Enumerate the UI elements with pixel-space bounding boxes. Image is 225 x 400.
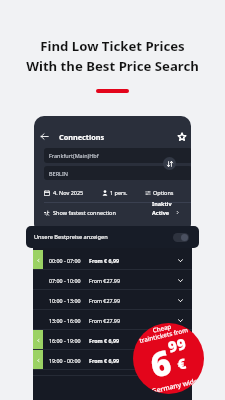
staticText: 16:00 - 19:00 [49, 337, 81, 344]
staticText: Active [152, 209, 170, 216]
button[interactable]: BERLIN [44, 166, 191, 180]
staticText: 10:00 - 13:00 [49, 297, 81, 304]
staticText: 00:00 - 07:00 [49, 257, 81, 264]
staticText: From € 6,99 [89, 257, 120, 264]
button[interactable]: 1 pers. [102, 189, 128, 196]
staticText: 19:00 - 00:00 [49, 357, 81, 364]
staticText: 1 pers. [110, 189, 128, 196]
staticText: Find Low Ticket Prices [40, 37, 185, 55]
staticText: Connections [59, 132, 105, 142]
staticText: Options [153, 189, 174, 196]
button[interactable]: 07:00 - 10:00 [33, 270, 192, 290]
button[interactable]: 4. Nov 2025 [44, 189, 84, 196]
button[interactable]: 16:00 - 19:00 [33, 330, 192, 350]
staticText: From €27.99 [89, 297, 120, 304]
staticText: 4. Nov 2025 [53, 189, 84, 196]
staticText: Show fastest connection [53, 209, 116, 216]
staticText: Inaktiv [152, 200, 172, 207]
button[interactable]: 13:00 - 16:00 [33, 310, 192, 330]
button[interactable]: Cheap traintickets from 6,99 euro German… [133, 323, 204, 394]
button[interactable]: Favourite [176, 131, 187, 142]
staticText: With the Best Price Search [26, 57, 199, 75]
staticText: Unsere Bestpreise anzeigen [34, 233, 108, 241]
button[interactable]: 00:00 - 07:00 [33, 250, 192, 270]
staticText: 6 [146, 338, 176, 388]
button[interactable]: 19:00 - 00:00 [33, 350, 192, 370]
staticText: Cheap traintickets from [136, 323, 189, 344]
staticText: From € 6,99 [89, 337, 120, 344]
button[interactable]: Unsere Bestpreise anzeigen [26, 226, 199, 248]
button[interactable]: Show fastest connection [44, 207, 191, 218]
staticText: From €27.99 [89, 317, 120, 324]
staticText: 07:00 - 10:00 [49, 277, 81, 284]
button[interactable]: Swap stations [163, 157, 176, 170]
staticText: BERLIN [49, 170, 68, 177]
staticText: From €27.99 [89, 277, 120, 284]
button[interactable]: 10:00 - 13:00 [33, 290, 192, 310]
staticText: 99 [166, 333, 188, 357]
button[interactable]: Frankfurt(Main)Hbf [44, 148, 191, 163]
staticText: 13:00 - 16:00 [49, 317, 81, 324]
staticText: € [175, 353, 188, 374]
staticText: Frankfurt(Main)Hbf [49, 152, 99, 159]
staticText: From € 6,99 [89, 357, 120, 364]
staticText: Germany wide [151, 376, 200, 394]
button[interactable]: Back [39, 131, 50, 142]
button[interactable]: Options [145, 189, 174, 196]
